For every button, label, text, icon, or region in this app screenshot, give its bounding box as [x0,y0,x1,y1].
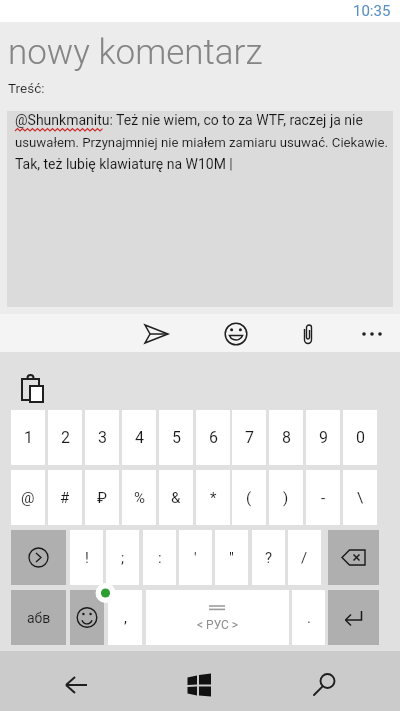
button[interactable] [70,590,104,645]
button[interactable]: 7 [232,410,266,465]
staticText: Tak, też lubię klawiaturę na W10M | [15,156,233,172]
staticText: абв [27,610,51,626]
button[interactable]: / [288,530,321,585]
staticText: @ [21,489,35,507]
button[interactable]: ) [269,470,303,525]
button[interactable]: ₽ [85,470,119,525]
staticText: % [134,489,145,507]
staticText: # [60,489,70,507]
staticText: nowy komentarz [8,32,263,73]
staticText: / [301,549,308,567]
button[interactable]: 0 [343,410,377,465]
button[interactable] [304,664,346,706]
staticText: ; [121,549,125,567]
staticText: * [210,489,217,507]
button[interactable]: ! [70,530,103,585]
button[interactable]: ' [179,530,212,585]
button[interactable]: 9 [306,410,340,465]
button[interactable]: # [48,470,82,525]
button[interactable] [140,318,172,350]
staticText: @Shunkmanitu: Też nie wiem, co to za WTF… [15,112,363,128]
button[interactable]: ; [106,530,139,585]
staticText: , [124,609,127,627]
button[interactable]: ( [232,470,266,525]
button[interactable] [328,590,379,645]
button[interactable] [52,664,94,706]
button[interactable] [11,530,66,585]
button[interactable]: " [215,530,248,585]
button[interactable]: 1 [11,410,45,465]
button[interactable]: ? [252,530,285,585]
staticText: 6 [209,428,218,447]
staticText: 5 [172,428,181,447]
button[interactable]: \ [343,470,377,525]
button[interactable] [7,111,393,307]
staticText: usuwałem. Przynajmniej nie miałem zamiar… [15,135,389,150]
staticText: \ [357,489,364,507]
button[interactable] [328,530,379,585]
staticText: ( [246,489,252,507]
button[interactable]: 8 [269,410,303,465]
button[interactable] [298,318,318,350]
staticText: 9 [319,428,328,447]
staticText: ) [283,489,289,507]
button[interactable]: 2 [48,410,82,465]
button[interactable] [360,318,386,350]
button[interactable] [16,370,48,404]
staticText: 8 [282,428,291,447]
staticText: " [229,549,234,567]
staticText: ? [265,549,273,567]
button[interactable]: - [306,470,340,525]
staticText: - [321,489,326,507]
staticText: 3 [98,428,107,447]
staticText: & [171,489,181,507]
button[interactable]: 4 [122,410,156,465]
button[interactable]: % [122,470,156,525]
button[interactable]: < РУС > [146,590,289,645]
staticText: ₽ [97,489,107,507]
staticText: : [158,549,162,567]
staticText: 4 [135,428,144,447]
button[interactable]: @ [11,470,45,525]
staticText: 10:35 [353,2,391,20]
button[interactable]: . [292,590,325,645]
staticText: 7 [245,428,254,447]
staticText: ' [194,549,197,567]
staticText: 2 [61,428,70,447]
button[interactable]: * [196,470,230,525]
button[interactable]: , [108,590,142,645]
button[interactable]: & [159,470,193,525]
button[interactable]: 5 [159,410,193,465]
staticText: 1 [24,428,33,447]
button[interactable] [178,664,220,706]
button[interactable]: 6 [196,410,230,465]
button[interactable]: 3 [85,410,119,465]
button[interactable]: абв [11,590,66,645]
button[interactable] [222,318,250,350]
staticText: Treść: [8,80,45,96]
staticText: < РУС > [197,618,239,632]
staticText: . [307,609,311,627]
staticText: ! [85,549,89,567]
button[interactable]: : [143,530,176,585]
staticText: 0 [356,428,365,447]
